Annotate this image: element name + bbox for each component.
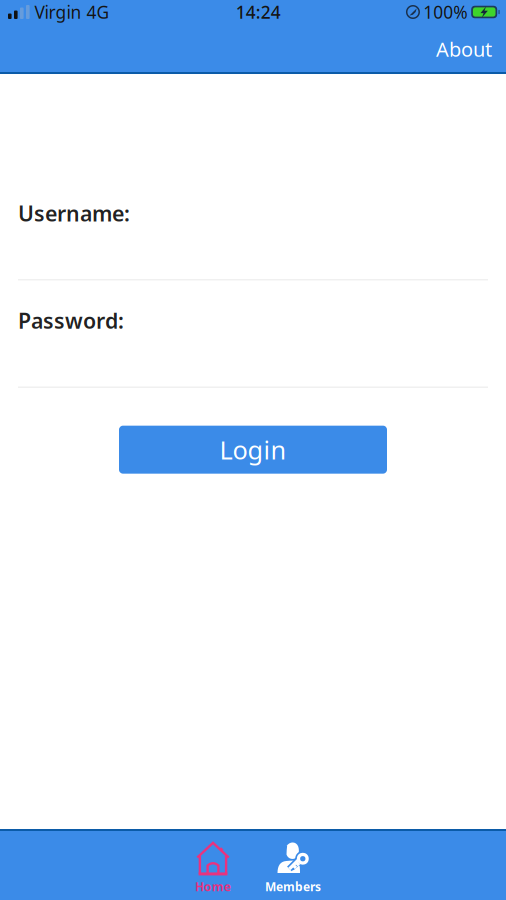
- button[interactable]: Members: [253, 829, 333, 900]
- button[interactable]: About: [422, 28, 506, 70]
- staticText: Login: [219, 433, 286, 466]
- staticText: Username:: [18, 199, 130, 227]
- staticText: Home: [195, 878, 231, 894]
- staticText: 100%: [423, 0, 467, 23]
- button[interactable]: Home: [173, 829, 253, 900]
- staticText: Virgin 4G: [35, 0, 110, 23]
- staticText: Members: [265, 878, 321, 894]
- staticText: 14:24: [236, 0, 281, 23]
- staticText: About: [436, 36, 492, 62]
- staticText: Password:: [18, 306, 124, 335]
- button[interactable]: Login: [119, 426, 387, 474]
